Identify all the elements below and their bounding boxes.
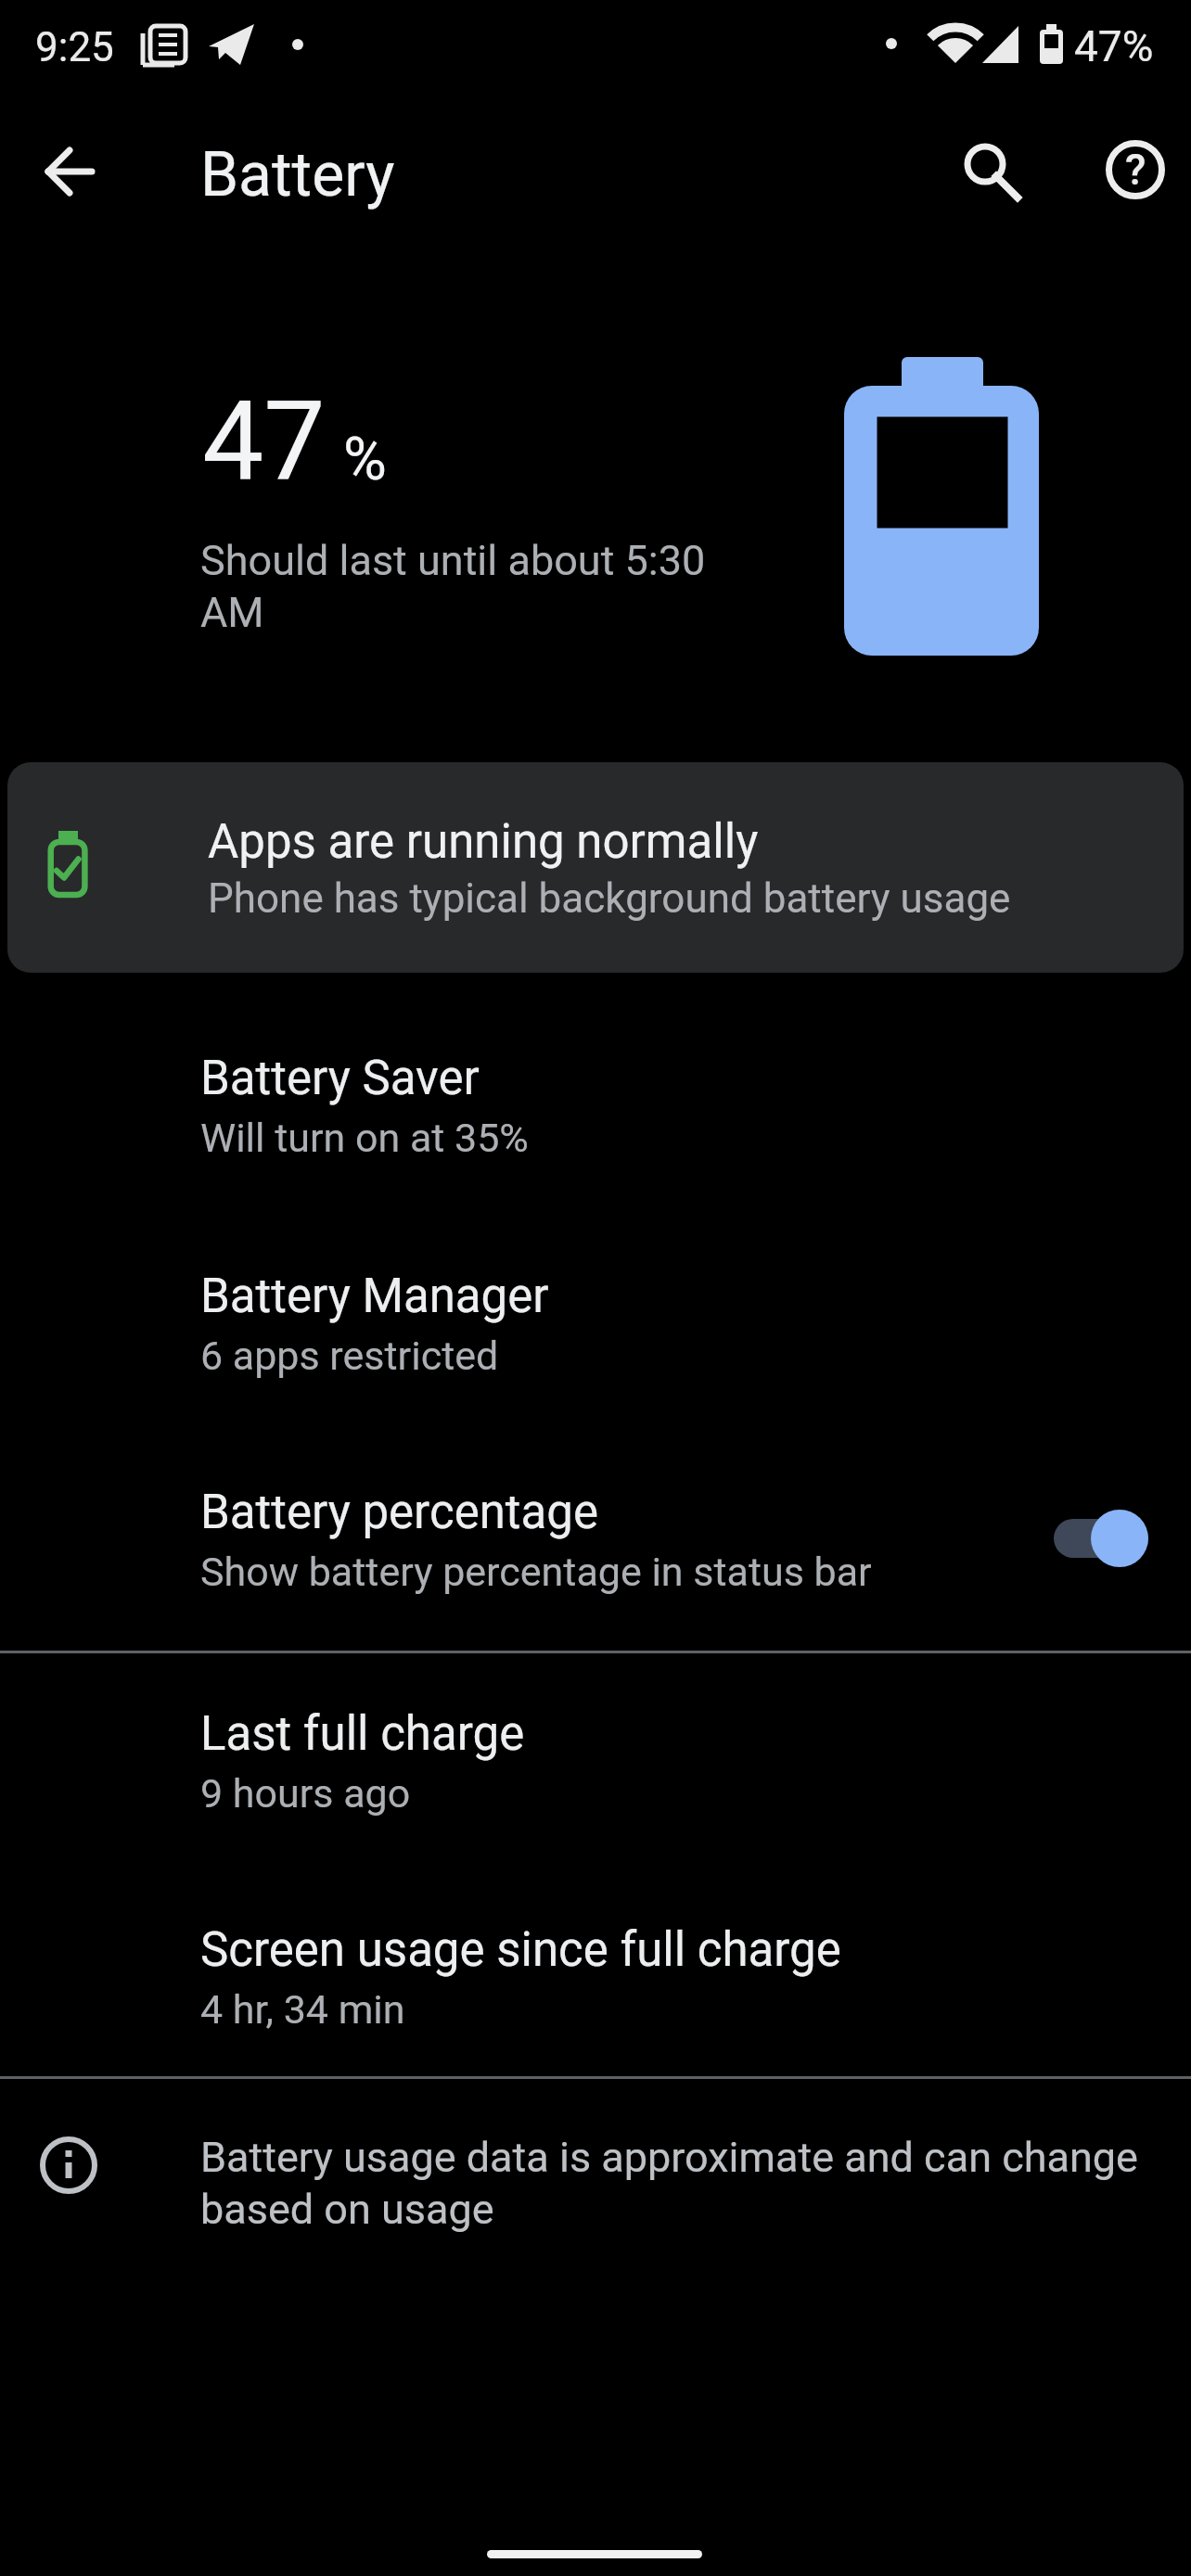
button[interactable]: Screen usage since full charge <box>0 1908 1191 2085</box>
button[interactable] <box>941 124 1030 213</box>
staticText: 47% <box>1074 21 1154 71</box>
staticText: ? <box>1125 145 1146 195</box>
staticText: % <box>343 425 387 494</box>
staticText: Last full charge <box>200 1706 525 1762</box>
button[interactable] <box>25 127 114 216</box>
staticText: Should last until about 5:30 <box>200 536 706 585</box>
staticText: Battery usage data is approximate and ca… <box>200 2133 1138 2182</box>
staticText: 4 hr, 34 min <box>200 1986 405 2033</box>
staticText: Battery Manager <box>200 1269 549 1324</box>
staticText: Battery <box>200 139 395 210</box>
staticText: Will turn on at 35% <box>200 1115 529 1161</box>
staticText: Battery Saver <box>200 1051 480 1106</box>
staticText: Screen usage since full charge <box>200 1922 841 1978</box>
staticText: based on usage <box>200 2185 494 2234</box>
button[interactable]: Battery Manager <box>0 1255 1191 1431</box>
staticText: Battery percentage <box>200 1485 598 1540</box>
staticText: 9:25 <box>35 23 114 71</box>
button[interactable]: Battery percentage <box>0 1471 1191 1647</box>
button[interactable]: Last full charge <box>0 1692 1191 1868</box>
button[interactable]: Apps are running normally <box>7 762 1184 973</box>
staticText: 6 apps restricted <box>200 1333 499 1379</box>
staticText: Apps are running normally <box>208 814 759 870</box>
staticText: Phone has typical background battery usa… <box>208 874 1011 923</box>
staticText: 47 <box>202 378 326 506</box>
button[interactable]: ? <box>1091 125 1180 214</box>
staticText: 9 hours ago <box>200 1770 411 1817</box>
button[interactable]: Battery Saver <box>0 1037 1191 1213</box>
staticText: Show battery percentage in status bar <box>200 1549 872 1595</box>
staticText: AM <box>200 588 264 637</box>
